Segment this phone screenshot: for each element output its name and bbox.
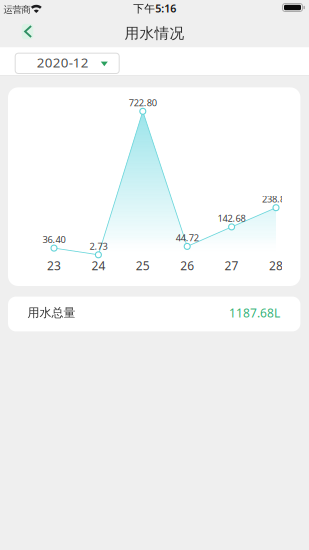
staticText: 2.73 <box>89 240 107 252</box>
staticText: 26 <box>180 257 194 273</box>
staticText: 2020-12 <box>37 53 89 71</box>
staticText: 722.80 <box>129 96 157 109</box>
staticText: 运营商 <box>3 4 30 15</box>
staticText: 238.88 <box>262 193 290 205</box>
staticText: 25 <box>136 257 150 273</box>
staticText: 36.40 <box>42 233 65 246</box>
button[interactable]: Select month <box>15 53 120 74</box>
staticText: 24 <box>91 257 105 273</box>
staticText: 用水情况 <box>124 24 184 42</box>
staticText: 23 <box>47 257 61 273</box>
staticText: 28 <box>269 257 283 273</box>
button[interactable]: Back <box>12 19 42 45</box>
staticText: 142.68 <box>218 212 246 224</box>
staticText: 下午5:16 <box>133 1 176 15</box>
staticText: 44.72 <box>176 231 199 244</box>
staticText: 27 <box>225 257 239 273</box>
staticText: 用水总量 <box>27 305 75 320</box>
staticText: 1187.68L <box>229 305 280 321</box>
